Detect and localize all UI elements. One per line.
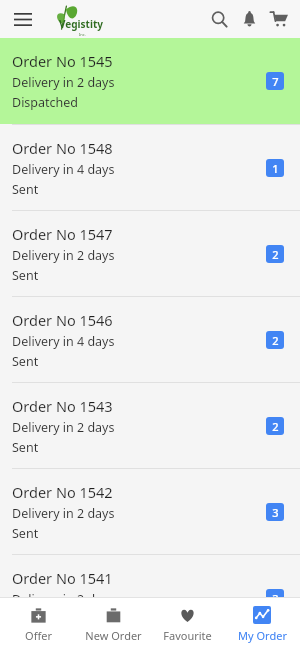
button[interactable]: Vegistity logo xyxy=(52,2,100,36)
button[interactable]: Offer xyxy=(2,601,74,647)
staticText: Order No 1545 xyxy=(12,51,113,71)
staticText: 3 xyxy=(272,505,279,520)
button[interactable]: New Order xyxy=(77,601,149,647)
staticText: Order No 1541 xyxy=(12,568,113,588)
staticText: Sent xyxy=(12,525,39,542)
button[interactable]: Search xyxy=(204,4,234,34)
staticText: My Order xyxy=(238,628,287,643)
button[interactable]: Order No 1541 xyxy=(0,554,300,597)
staticText: New Order xyxy=(85,628,142,643)
staticText: Delivery in 2 days xyxy=(12,591,115,597)
staticText: 1 xyxy=(272,161,279,176)
staticText: Vegistity xyxy=(59,17,103,31)
staticText: Delivery in 4 days xyxy=(12,161,115,178)
staticText: 3 xyxy=(272,591,279,597)
staticText: Order No 1542 xyxy=(12,482,113,502)
staticText: Order No 1547 xyxy=(12,224,113,244)
staticText: Sent xyxy=(12,181,39,198)
staticText: Offer xyxy=(25,628,52,643)
staticText: Favourite xyxy=(163,628,212,643)
staticText: 2 xyxy=(272,419,279,434)
button[interactable]: Cart xyxy=(264,4,294,34)
button[interactable]: Menu xyxy=(8,4,38,34)
staticText: Delivery in 4 days xyxy=(12,333,115,350)
button[interactable]: My Order xyxy=(226,601,298,647)
staticText: Delivery in 2 days xyxy=(12,247,115,264)
staticText: Sent xyxy=(12,267,39,284)
staticText: 7 xyxy=(272,74,279,89)
staticText: Order No 1543 xyxy=(12,396,113,416)
staticText: Delivery in 2 days xyxy=(12,505,115,522)
staticText: Order No 1546 xyxy=(12,310,113,330)
staticText: Sent xyxy=(12,439,39,456)
staticText: Delivery in 2 days xyxy=(12,419,115,436)
button[interactable]: Order No 1543 xyxy=(0,382,300,468)
staticText: Inc. xyxy=(79,32,86,37)
staticText: 2 xyxy=(272,247,279,262)
button[interactable]: Order No 1548 xyxy=(0,124,300,210)
button[interactable]: Order No 1542 xyxy=(0,468,300,554)
button[interactable]: Notifications xyxy=(234,4,264,34)
button[interactable]: Order No 1546 xyxy=(0,296,300,382)
button[interactable]: Favourite xyxy=(151,601,223,647)
staticText: Dispatched xyxy=(12,94,79,111)
button[interactable]: Order No 1547 xyxy=(0,210,300,296)
staticText: Order No 1548 xyxy=(12,138,113,158)
button[interactable]: Order No 1545 xyxy=(0,38,300,124)
staticText: Sent xyxy=(12,353,39,370)
staticText: Delivery in 2 days xyxy=(12,74,115,91)
staticText: 2 xyxy=(272,333,279,348)
